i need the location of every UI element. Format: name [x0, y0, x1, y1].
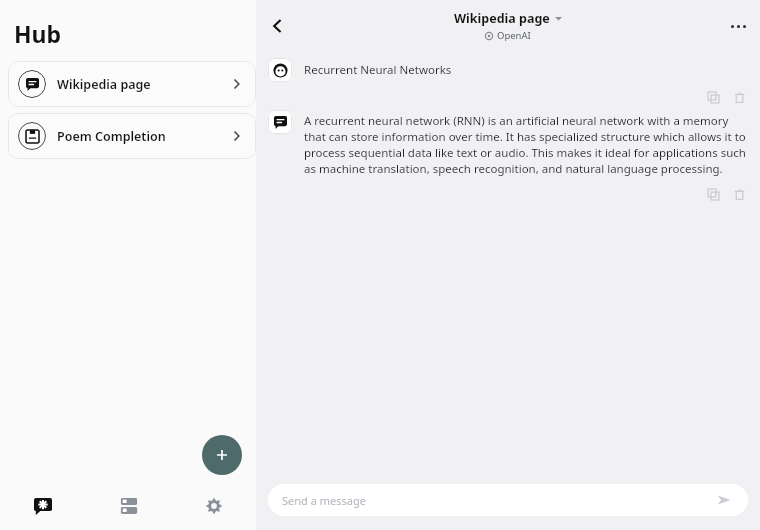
staticText: Hub: [14, 18, 62, 49]
button[interactable]: Wikipedia page: [8, 61, 256, 107]
button[interactable]: Back: [262, 10, 294, 42]
staticText: A recurrent neural network (RNN) is an a…: [304, 113, 748, 177]
button[interactable]: Copy: [704, 185, 722, 203]
button[interactable]: Wikipedia page: [454, 10, 562, 42]
staticText: Wikipedia page: [57, 76, 151, 93]
staticText: Wikipedia page: [454, 10, 550, 27]
button[interactable]: New chat: [202, 435, 242, 475]
button[interactable]: Send: [714, 490, 734, 510]
button[interactable]: Poem Completion: [8, 113, 256, 159]
button[interactable]: Delete: [730, 88, 748, 106]
button[interactable]: Chats: [0, 482, 86, 530]
button[interactable]: Settings: [171, 482, 256, 530]
button[interactable]: More options: [724, 12, 752, 40]
button[interactable]: Library: [86, 482, 171, 530]
button[interactable]: Delete: [730, 185, 748, 203]
staticText: OpenAI: [497, 29, 531, 42]
button[interactable]: Copy: [704, 88, 722, 106]
staticText: Send a message: [282, 493, 366, 508]
button[interactable]: Send a message: [268, 484, 748, 516]
staticText: Recurrent Neural Networks: [304, 62, 452, 78]
staticText: Poem Completion: [57, 128, 166, 145]
